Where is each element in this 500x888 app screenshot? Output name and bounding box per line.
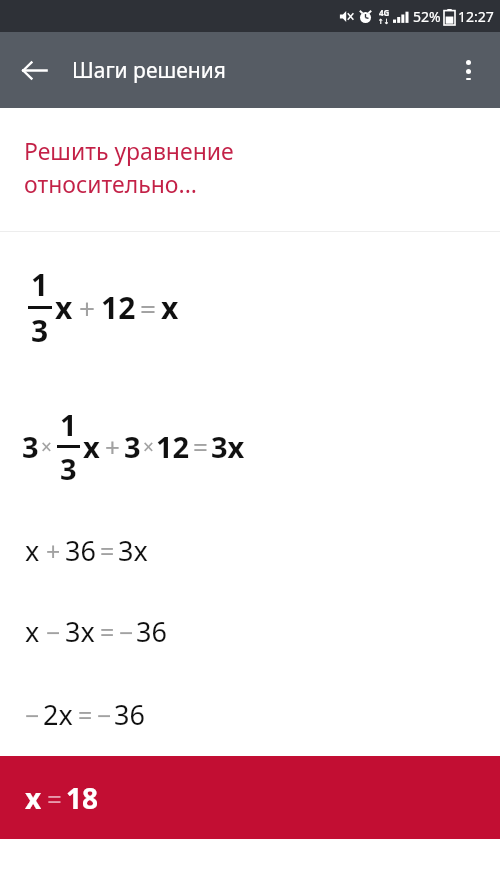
staticText: 3 [124,427,141,466]
staticText: ↑↓ [378,18,390,26]
staticText: + [46,534,61,568]
staticText: x [83,427,100,466]
button[interactable]: Back [12,48,56,92]
staticText: 36 [114,696,145,733]
staticText: − [119,615,134,649]
staticText: 12 [156,427,190,466]
staticText: × [143,434,154,460]
staticText: − [97,698,112,732]
staticText: x [25,613,40,650]
staticText: = [47,781,62,816]
staticText: = [140,289,157,327]
staticText: 12 [101,287,136,328]
staticText: − [46,615,61,649]
staticText: 12:27 [458,7,494,26]
staticText: 36 [65,532,96,569]
staticText: 3 [22,427,39,466]
staticText: 18 [66,779,99,817]
staticText: 2x [43,696,73,733]
staticText: = [100,615,115,649]
staticText: 36 [136,613,167,650]
staticText: 52% [413,7,441,26]
staticText: 1 [60,405,77,444]
staticText: x [55,287,73,328]
button[interactable]: More options [446,48,490,92]
staticText: Решить уравнение относительно... [24,135,234,200]
staticText: 1 [31,264,49,305]
staticText: = [193,429,208,464]
staticText: 3x [211,427,245,466]
staticText: x [161,287,179,328]
staticText: 4G [379,7,390,18]
staticText: x [25,779,42,817]
staticText: = [78,698,93,732]
staticText: + [105,429,120,464]
staticText: 3 [31,310,49,351]
staticText: Шаги решения [72,56,226,85]
staticText: 3x [118,532,148,569]
staticText: 3 [60,449,77,488]
staticText: x [25,532,40,569]
button[interactable]: x [0,756,500,839]
staticText: − [25,698,40,732]
staticText: 3x [65,613,95,650]
staticText: = [100,534,115,568]
staticText: × [41,434,52,460]
staticText: + [79,289,96,327]
